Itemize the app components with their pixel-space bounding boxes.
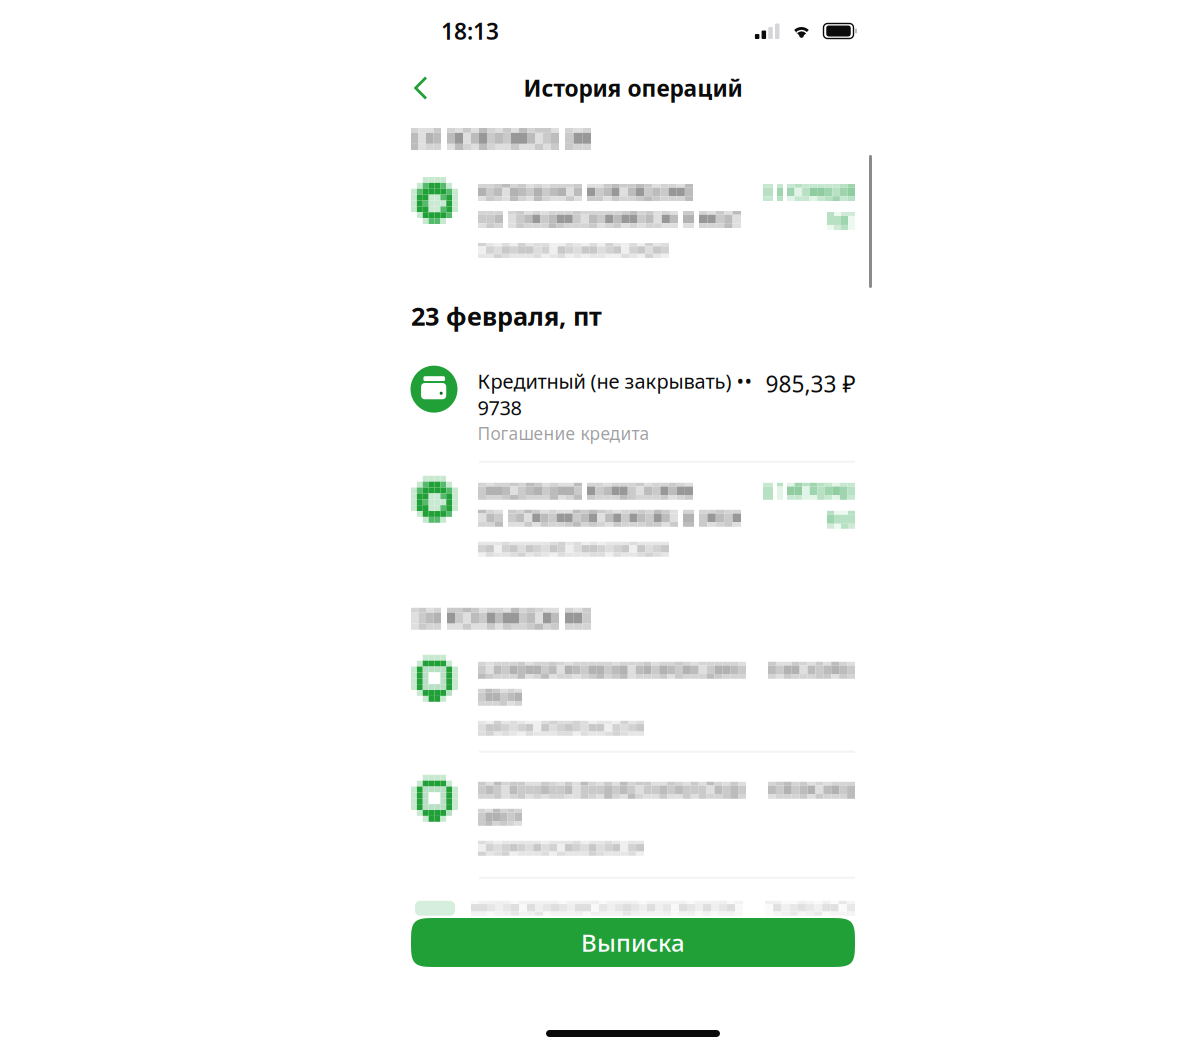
staticText: Погашение кредита bbox=[477, 422, 649, 445]
button[interactable]: Операция bbox=[411, 775, 855, 856]
staticText: 18:13 bbox=[441, 16, 499, 46]
staticText: Кредитный (не закрывать) •• 9738 bbox=[477, 368, 752, 421]
button[interactable]: Кредитный (не закрывать) •• 9738 bbox=[411, 366, 855, 445]
staticText: 23 февраля, пт bbox=[411, 299, 602, 333]
button[interactable]: Операция bbox=[411, 177, 855, 258]
staticText: Выписка bbox=[581, 927, 685, 958]
button[interactable]: Назад bbox=[398, 65, 444, 111]
staticText: 985,33 ₽ bbox=[765, 369, 855, 399]
button[interactable]: Выписка bbox=[411, 918, 855, 967]
button[interactable]: Операция bbox=[411, 655, 855, 736]
button[interactable]: Операция bbox=[411, 476, 855, 557]
staticText: История операций bbox=[523, 73, 742, 103]
